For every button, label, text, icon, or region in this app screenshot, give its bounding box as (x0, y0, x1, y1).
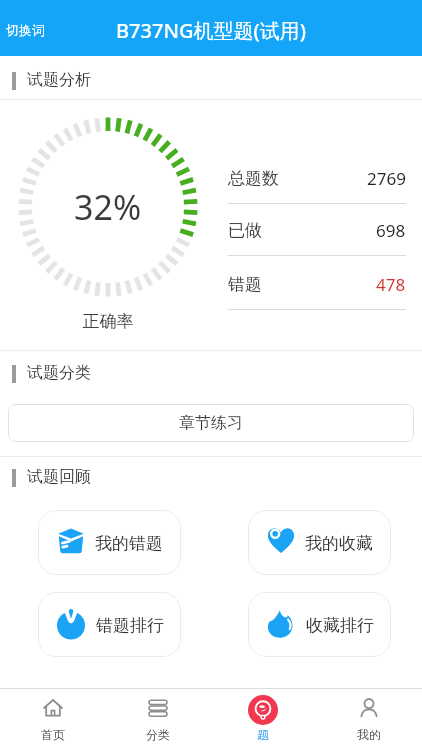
staticText: 2769 (367, 167, 406, 190)
button[interactable]: 收藏排行 (248, 592, 391, 657)
button[interactable]: 首页 (0, 689, 105, 750)
staticText: 分类 (146, 727, 170, 742)
staticText: 试题分类 (27, 363, 91, 383)
staticText: 我的 (357, 727, 381, 742)
staticText: B737NG机型题(试用) (116, 17, 306, 44)
button[interactable]: 切换词 (6, 22, 45, 38)
staticText: 章节练习 (179, 413, 243, 433)
button[interactable]: 我的错题 (38, 510, 181, 575)
staticText: 题 (257, 727, 269, 742)
staticText: 已做 (228, 220, 262, 241)
staticText: 698 (376, 219, 406, 242)
staticText: 正确率 (18, 311, 198, 332)
staticText: 我的错题 (95, 533, 163, 554)
button[interactable]: 章节练习 (8, 404, 414, 442)
staticText: 试题回顾 (27, 467, 91, 487)
staticText: 首页 (41, 727, 65, 742)
button[interactable]: 我的收藏 (248, 510, 391, 575)
staticText: 478 (376, 273, 406, 296)
button[interactable]: 错题排行 (38, 592, 181, 657)
button[interactable]: 分类 (105, 689, 210, 750)
button[interactable]: 题 (210, 689, 316, 750)
staticText: 收藏排行 (306, 615, 374, 636)
staticText: 试题分析 (27, 70, 91, 90)
staticText: 我的收藏 (305, 533, 373, 554)
staticText: 错题 (228, 274, 262, 295)
staticText: 32% (74, 184, 142, 230)
staticText: 切换词 (6, 22, 45, 38)
button[interactable]: 我的 (316, 689, 422, 750)
staticText: 错题排行 (96, 615, 164, 636)
staticText: 总题数 (228, 168, 279, 189)
